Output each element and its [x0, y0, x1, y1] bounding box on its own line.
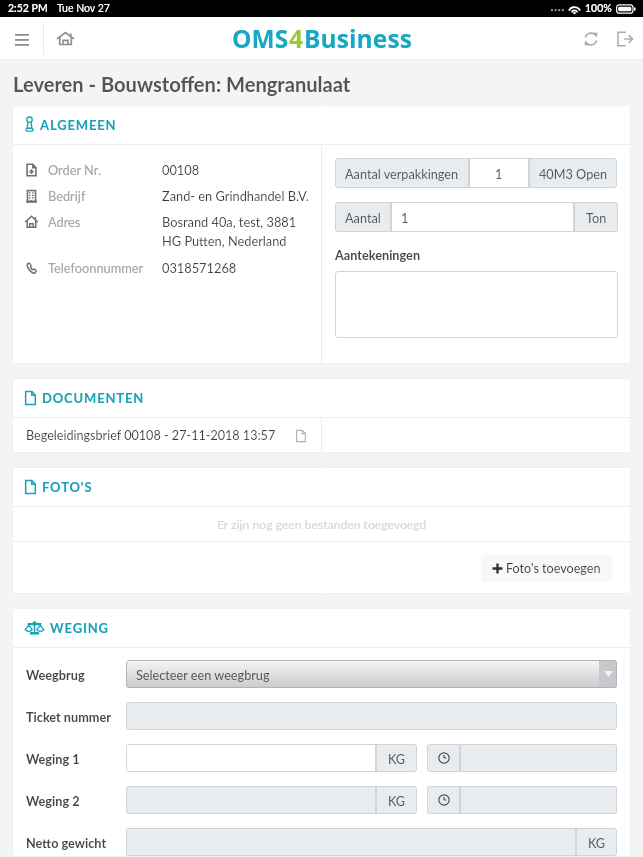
- button[interactable]: Foto's toevoegen: [481, 555, 612, 582]
- button[interactable]: [335, 271, 618, 338]
- staticText: KG: [588, 835, 606, 850]
- staticText: Ton: [586, 210, 607, 225]
- button[interactable]: Menu: [0, 17, 43, 60]
- button[interactable]: Begeleidingsbrief 00108 - 27-11-2018 13:…: [12, 418, 321, 453]
- staticText: Adres: [48, 214, 81, 229]
- staticText: 100%: [585, 2, 612, 15]
- staticText: 0318571268: [162, 260, 237, 275]
- staticText: 00108: [162, 162, 200, 177]
- staticText: Business: [304, 22, 412, 55]
- staticText: Ticket nummer: [26, 709, 111, 724]
- button[interactable]: Log out: [607, 17, 643, 60]
- button[interactable]: [126, 786, 376, 814]
- button[interactable]: [126, 744, 376, 772]
- staticText: Leveren - Bouwstoffen: Mengranulaat: [13, 72, 351, 96]
- staticText: Aantekeningen: [335, 247, 421, 262]
- staticText: OMS: [232, 22, 289, 55]
- staticText: 2:52 PM: [8, 2, 48, 15]
- staticText: ALGEMEEN: [40, 117, 117, 133]
- staticText: Selecteer een weegbrug: [136, 667, 270, 682]
- staticText: DOCUMENTEN: [42, 390, 145, 406]
- button[interactable]: Home: [44, 17, 86, 60]
- staticText: Zand- en Grindhandel B.V.: [162, 188, 309, 203]
- staticText: Netto gewicht: [26, 835, 107, 850]
- staticText: Aantal verpakkingen: [345, 166, 459, 181]
- staticText: Bedrijf: [48, 188, 86, 203]
- staticText: FOTO'S: [42, 479, 93, 495]
- button[interactable]: Selecteer een weegbrug: [126, 660, 617, 688]
- staticText: Bosrand 40a, test, 3881 HG Putten, Neder…: [162, 214, 297, 249]
- staticText: Telefoonnummer: [48, 260, 144, 275]
- button[interactable]: Pick time: [427, 744, 460, 772]
- staticText: Weging 1: [26, 751, 80, 766]
- staticText: Weegbrug: [26, 667, 85, 682]
- staticText: Order Nr.: [48, 162, 101, 177]
- staticText: WEGING: [50, 620, 109, 636]
- staticText: Er zijn nog geen bestanden toegevoegd: [217, 517, 427, 532]
- staticText: 40M3 Open: [539, 166, 608, 181]
- staticText: 1: [401, 210, 409, 225]
- staticText: Tue Nov 27: [57, 2, 110, 15]
- staticText: Weging 2: [26, 793, 80, 808]
- staticText: KG: [388, 751, 406, 766]
- staticText: Aantal: [345, 210, 381, 225]
- staticText: Begeleidingsbrief 00108 - 27-11-2018 13:…: [26, 428, 276, 443]
- button[interactable]: Refresh: [574, 17, 607, 60]
- staticText: Foto's toevoegen: [506, 561, 601, 576]
- button[interactable]: Pick time: [427, 786, 460, 814]
- staticText: 1: [495, 166, 503, 181]
- staticText: 4: [289, 22, 304, 55]
- staticText: KG: [388, 793, 406, 808]
- button[interactable]: [126, 702, 617, 730]
